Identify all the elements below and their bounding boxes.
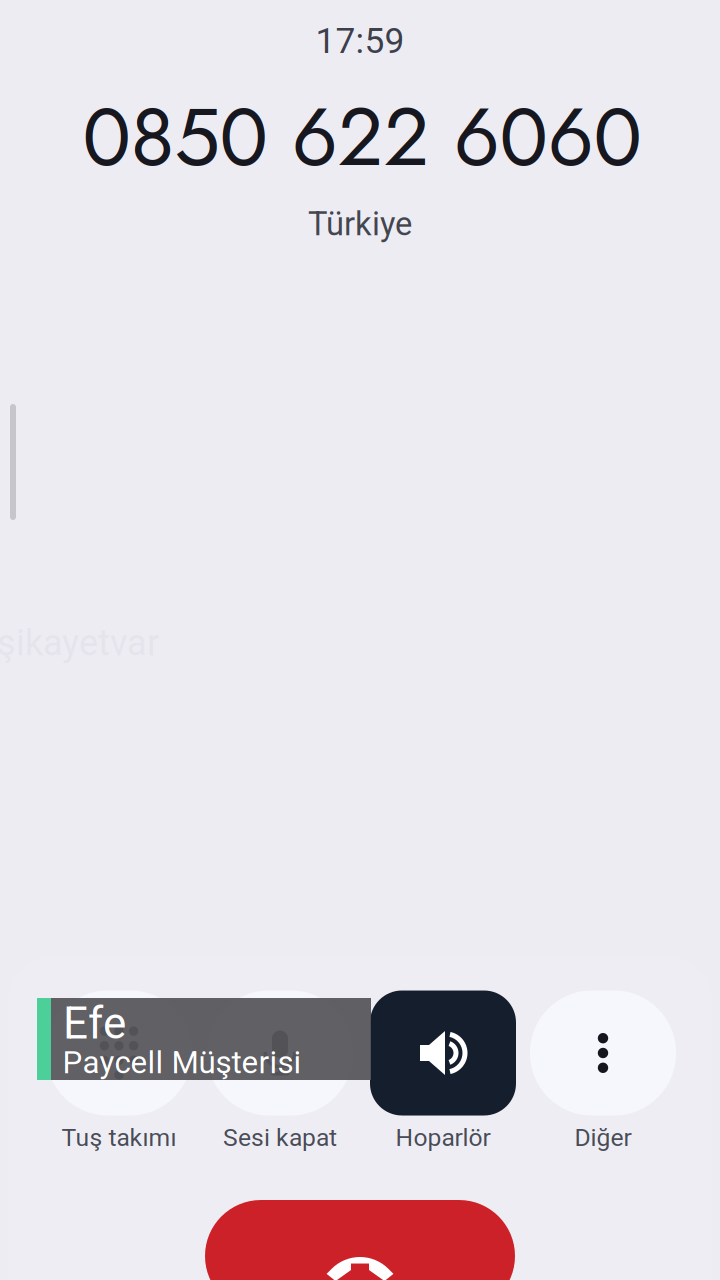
button[interactable]: Diğer xyxy=(530,990,676,1159)
button[interactable]: Tuş takımı xyxy=(46,990,192,1159)
button[interactable]: Hoparlör xyxy=(370,990,516,1159)
staticText: Tuş takımı xyxy=(61,1123,176,1152)
staticText: 17:59 xyxy=(315,20,404,62)
button[interactable]: Sesi kapat xyxy=(207,990,353,1159)
staticText: Diğer xyxy=(574,1123,631,1152)
staticText: Hoparlör xyxy=(395,1123,490,1152)
staticText: 0850 622 6060 xyxy=(82,79,641,195)
button[interactable]: End call xyxy=(205,1200,515,1280)
staticText: Paycell Müşterisi xyxy=(62,1044,301,1081)
staticText: Efe xyxy=(63,998,126,1049)
staticText: Sesi kapat xyxy=(223,1123,337,1152)
staticText: Türkiye xyxy=(308,205,412,243)
